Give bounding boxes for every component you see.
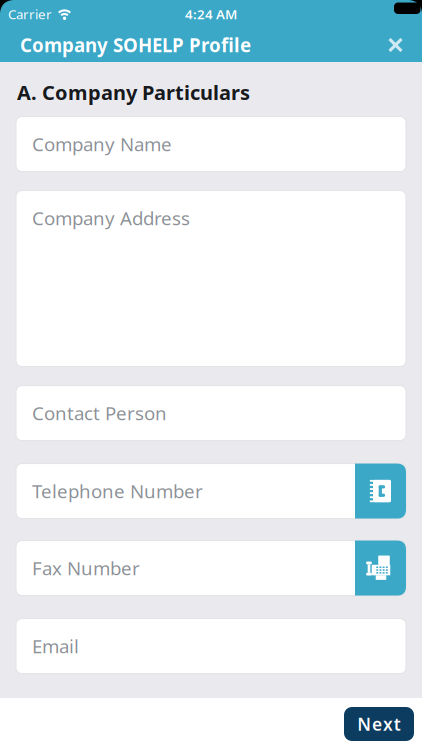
- staticText: Fax Number: [32, 556, 140, 580]
- button[interactable]: Contact Person: [16, 386, 406, 441]
- button[interactable]: Email: [16, 619, 406, 674]
- button[interactable]: Close: [388, 37, 407, 52]
- staticText: Next: [357, 712, 401, 735]
- button[interactable]: Fax Number: [16, 541, 406, 596]
- staticText: A. Company Particulars: [17, 79, 250, 106]
- button[interactable]: Company Name: [16, 117, 406, 172]
- staticText: Telephone Number: [32, 479, 203, 503]
- staticText: Carrier: [8, 5, 52, 23]
- button[interactable]: Next: [344, 707, 414, 741]
- staticText: Company Address: [32, 206, 190, 230]
- staticText: Contact Person: [32, 401, 167, 425]
- staticText: Company Name: [32, 132, 172, 156]
- button[interactable]: Telephone Number: [16, 464, 406, 519]
- staticText: 4:24 AM: [185, 5, 237, 23]
- staticText: Company SOHELP Profile: [20, 33, 251, 57]
- button[interactable]: Pick fax number: [355, 541, 406, 596]
- button[interactable]: Company Address: [16, 191, 406, 367]
- staticText: Email: [32, 634, 79, 658]
- button[interactable]: Pick from contacts: [355, 464, 406, 519]
